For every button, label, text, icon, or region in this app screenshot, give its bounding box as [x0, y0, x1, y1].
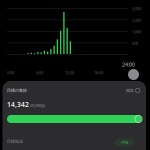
staticText: 12:00: [65, 70, 74, 75]
staticText: 0:00: [7, 70, 14, 75]
staticText: 1,000: [132, 29, 141, 34]
staticText: 18:00: [94, 70, 103, 75]
button[interactable]: 71%: [115, 138, 134, 146]
staticText: 目標の進捗: [7, 88, 27, 93]
staticText: 24:00: [122, 61, 135, 68]
staticText: 2,000: [132, 17, 141, 23]
staticText: 14,342: [7, 100, 29, 109]
staticText: 編集: [126, 88, 134, 93]
staticText: 500: [132, 40, 138, 46]
button[interactable]: Time scrubber: [128, 69, 139, 80]
staticText: 6:00: [36, 70, 43, 75]
staticText: 目標達成: [7, 139, 23, 144]
staticText: 3,000: [132, 6, 141, 11]
button[interactable]: 編集: [126, 88, 140, 93]
staticText: /20,000歩: [29, 103, 45, 108]
staticText: 71%: [121, 140, 128, 145]
